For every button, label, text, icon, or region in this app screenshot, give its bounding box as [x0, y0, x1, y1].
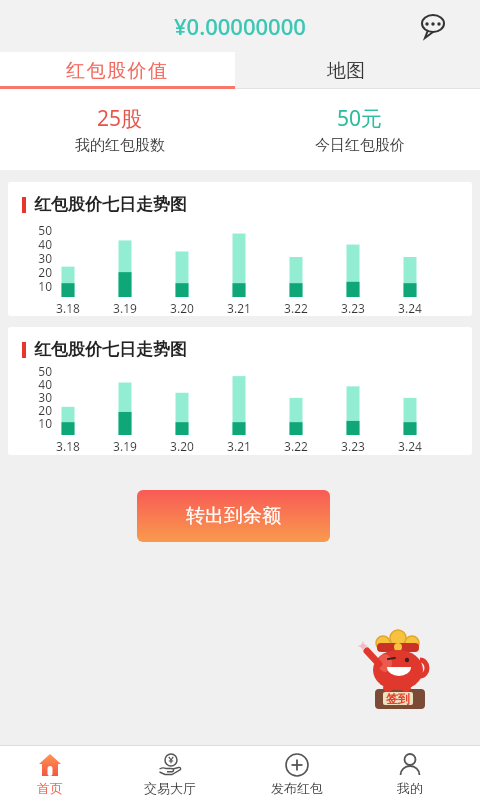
staticText: 30 — [30, 250, 52, 266]
staticText: 3.22 — [281, 300, 311, 316]
staticText: 50 — [30, 222, 52, 238]
staticText: 50元 — [337, 104, 383, 133]
staticText: 25股 — [97, 104, 143, 133]
staticText: 20 — [30, 402, 52, 418]
button[interactable]: 发布红包 — [237, 746, 357, 800]
staticText: 3.19 — [110, 300, 140, 316]
staticText: 我的 — [397, 780, 423, 796]
staticText: 3.23 — [338, 438, 368, 454]
button[interactable]: 红包股价值 — [0, 52, 235, 89]
staticText: 3.24 — [395, 438, 425, 454]
button[interactable]: 首页 — [0, 746, 110, 800]
staticText: 20 — [30, 264, 52, 280]
staticText: 红包股价七日走势图 — [34, 194, 187, 215]
button[interactable]: 交易大厅 — [110, 746, 230, 800]
staticText: 今日红包股价 — [315, 136, 405, 155]
button[interactable] — [420, 13, 446, 39]
staticText: 3.24 — [395, 300, 425, 316]
staticText: 首页 — [37, 780, 63, 796]
staticText: 3.18 — [53, 300, 83, 316]
staticText: 地图 — [327, 59, 365, 83]
staticText: 30 — [30, 389, 52, 405]
button[interactable]: 签到 — [355, 628, 435, 716]
staticText: 3.19 — [110, 438, 140, 454]
staticText: 40 — [30, 236, 52, 252]
staticText: 我的红包股数 — [75, 136, 165, 155]
button[interactable]: 地图 — [235, 52, 480, 89]
staticText: 3.21 — [224, 438, 254, 454]
staticText: 发布红包 — [271, 780, 323, 796]
staticText: 红包股价值 — [66, 59, 169, 83]
staticText: 转出到余额 — [186, 504, 281, 528]
staticText: ¥0.00000000 — [174, 11, 306, 41]
staticText: 签到 — [384, 691, 412, 706]
button[interactable]: 25股 — [0, 89, 240, 170]
staticText: 10 — [30, 278, 52, 294]
button[interactable]: 50元 — [240, 89, 480, 170]
staticText: 3.23 — [338, 300, 368, 316]
staticText: 50 — [30, 363, 52, 379]
staticText: 交易大厅 — [144, 780, 196, 796]
staticText: 红包股价七日走势图 — [34, 339, 187, 360]
staticText: 3.20 — [167, 438, 197, 454]
staticText: 3.22 — [281, 438, 311, 454]
staticText: 40 — [30, 376, 52, 392]
staticText: 10 — [30, 415, 52, 431]
staticText: 3.21 — [224, 300, 254, 316]
button[interactable]: 转出到余额 — [137, 490, 330, 542]
staticText: 3.18 — [53, 438, 83, 454]
staticText: 3.20 — [167, 300, 197, 316]
button[interactable]: 我的 — [350, 746, 470, 800]
